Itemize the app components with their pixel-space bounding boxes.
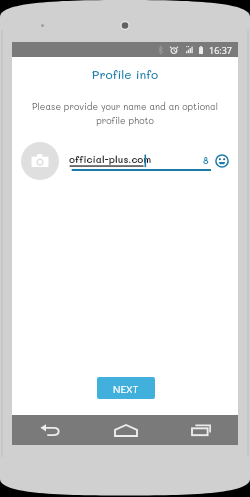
staticText: Profile info bbox=[12, 66, 238, 82]
button[interactable]: official-plus.com bbox=[69, 152, 214, 172]
button[interactable]: Add profile photo bbox=[21, 142, 59, 180]
button[interactable]: Insert emoji bbox=[214, 153, 229, 168]
button[interactable]: Back bbox=[12, 415, 88, 445]
staticText: official-plus.com bbox=[69, 152, 152, 165]
button[interactable]: Recent apps bbox=[163, 415, 238, 445]
staticText: NEXT bbox=[113, 382, 139, 395]
staticText: Please provide your name and an optional… bbox=[28, 101, 222, 126]
button[interactable]: NEXT bbox=[97, 377, 155, 399]
staticText: 16:37 bbox=[209, 44, 233, 56]
staticText: 8 bbox=[203, 155, 209, 167]
button[interactable]: Home bbox=[88, 415, 163, 445]
